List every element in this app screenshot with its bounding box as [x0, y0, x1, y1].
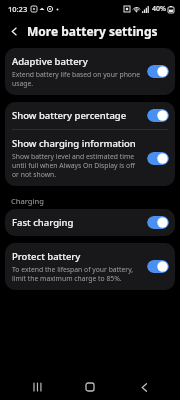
staticText: 40%	[152, 4, 166, 14]
staticText: Protect battery	[12, 250, 81, 263]
button[interactable]: Toggle, on	[147, 65, 169, 78]
staticText: 10:23	[8, 4, 28, 14]
button[interactable]: Toggle, on	[147, 152, 169, 165]
staticText: Show battery level and estimated time un…	[12, 152, 141, 179]
button[interactable]: Adaptive battery	[5, 48, 175, 95]
button[interactable]: Protect battery	[5, 243, 175, 290]
button[interactable]: Show charging information	[5, 130, 175, 186]
button[interactable]: Toggle, on	[147, 260, 169, 273]
button[interactable]: Toggle, on	[147, 216, 169, 229]
staticText: To extend the lifespan of your battery, …	[12, 265, 141, 283]
staticText: Extend battery life based on your phone …	[12, 70, 141, 88]
button[interactable]: Fast charging	[5, 209, 175, 236]
button[interactable]: Toggle, on	[147, 109, 169, 122]
staticText: Adaptive battery	[12, 55, 88, 68]
button[interactable]: Home	[73, 375, 107, 399]
staticText: Charging	[11, 196, 44, 206]
button[interactable]: Show battery percentage	[5, 102, 175, 129]
button[interactable]: Back	[127, 375, 161, 399]
staticText: Show charging information	[12, 137, 136, 150]
button[interactable]: Back	[4, 21, 24, 41]
staticText: More battery settings	[27, 23, 158, 39]
button[interactable]: Recent apps	[20, 375, 54, 399]
staticText: Fast charging	[12, 216, 74, 229]
staticText: Show battery percentage	[12, 109, 127, 122]
